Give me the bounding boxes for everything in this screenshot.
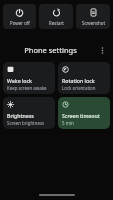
staticText: 5 min — [62, 120, 74, 126]
button[interactable]: Rotation lock — [58, 62, 110, 94]
button[interactable]: Screenshot — [76, 4, 110, 29]
staticText: Phone settings — [24, 45, 77, 55]
button[interactable]: Brightness — [3, 97, 55, 129]
staticText: Screen timeout — [62, 112, 100, 119]
staticText: Rotation lock — [62, 77, 95, 84]
staticText: Brightness — [7, 112, 34, 119]
staticText: Power off — [10, 20, 30, 26]
staticText: Wake lock — [7, 77, 32, 84]
staticText: Restart — [49, 20, 64, 26]
button[interactable]: Power off — [3, 4, 36, 29]
staticText: Screen brightness — [7, 120, 45, 126]
staticText: Keep screen awake — [7, 85, 47, 91]
button[interactable]: Screen timeout — [58, 97, 110, 129]
staticText: Screenshot — [82, 20, 105, 26]
button[interactable]: More options — [96, 44, 109, 57]
button[interactable]: Restart — [39, 4, 73, 29]
staticText: Lock orientation — [62, 85, 96, 91]
button[interactable]: Wake lock — [3, 62, 55, 94]
